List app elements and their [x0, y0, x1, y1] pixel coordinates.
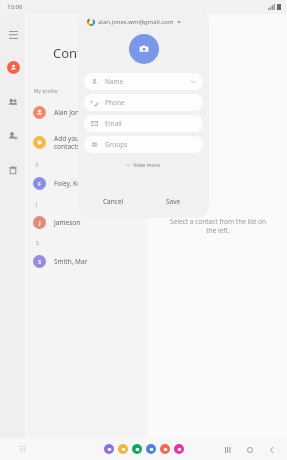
button[interactable]: F — [25, 171, 148, 195]
button[interactable]: Groups — [84, 136, 203, 153]
staticText: alan.jones.wm@gmail.com — [98, 18, 174, 26]
staticText: Alan Jones — [54, 108, 86, 117]
staticText: Name — [105, 77, 124, 86]
staticText: Email — [105, 119, 122, 128]
button[interactable]: Phone — [132, 444, 142, 454]
staticText: Phone — [105, 98, 125, 107]
button[interactable]: Recents — [222, 444, 233, 455]
button[interactable]: Contacts — [160, 444, 170, 454]
staticText: Foley, Ke — [54, 179, 81, 188]
button[interactable]: Back — [266, 444, 277, 455]
staticText: S — [36, 240, 39, 247]
button[interactable]: J — [25, 210, 148, 234]
button[interactable]: Add contact — [3, 126, 23, 146]
button[interactable]: Apps — [18, 444, 28, 454]
button[interactable]: Name — [84, 73, 203, 90]
staticText: S — [38, 258, 42, 266]
staticText: Groups — [105, 140, 128, 149]
staticText: View more — [133, 161, 161, 168]
button[interactable]: Home — [244, 444, 255, 455]
button[interactable]: alan.jones.wm@gmail.com — [84, 18, 203, 26]
staticText: Select a contact from the list on the le… — [170, 217, 266, 235]
button[interactable]: Gallery — [174, 444, 184, 454]
button[interactable]: Add your contacts — [25, 130, 148, 154]
button[interactable]: S — [25, 249, 148, 273]
button[interactable]: Cancel — [84, 194, 143, 209]
button[interactable]: Phone — [84, 94, 203, 111]
button[interactable]: Trash — [3, 160, 23, 180]
button[interactable]: Alan Jones — [25, 100, 148, 124]
button[interactable]: Email — [84, 115, 203, 132]
staticText: Contacts — [53, 44, 107, 62]
staticText: Smith, Mar — [54, 257, 88, 266]
staticText: J — [39, 219, 41, 227]
button[interactable]: View more — [120, 159, 167, 170]
staticText: F — [38, 180, 42, 188]
staticText: F — [36, 162, 39, 169]
staticText: Save — [166, 197, 181, 206]
staticText: Add your contacts — [54, 134, 82, 151]
staticText: My profile — [34, 88, 58, 95]
button[interactable]: Menu — [2, 24, 24, 46]
button[interactable]: Add photo — [129, 34, 159, 64]
staticText: Jameson — [54, 218, 81, 227]
staticText: 10:00 — [7, 3, 23, 11]
button[interactable]: Messages — [104, 444, 114, 454]
button[interactable]: Save — [143, 194, 203, 209]
staticText: J — [36, 201, 38, 208]
button[interactable]: Files — [118, 444, 128, 454]
staticText: Cancel — [103, 197, 124, 206]
button[interactable]: Groups — [3, 92, 23, 112]
button[interactable]: Contacts — [2, 56, 24, 78]
button[interactable]: Internet — [146, 444, 156, 454]
